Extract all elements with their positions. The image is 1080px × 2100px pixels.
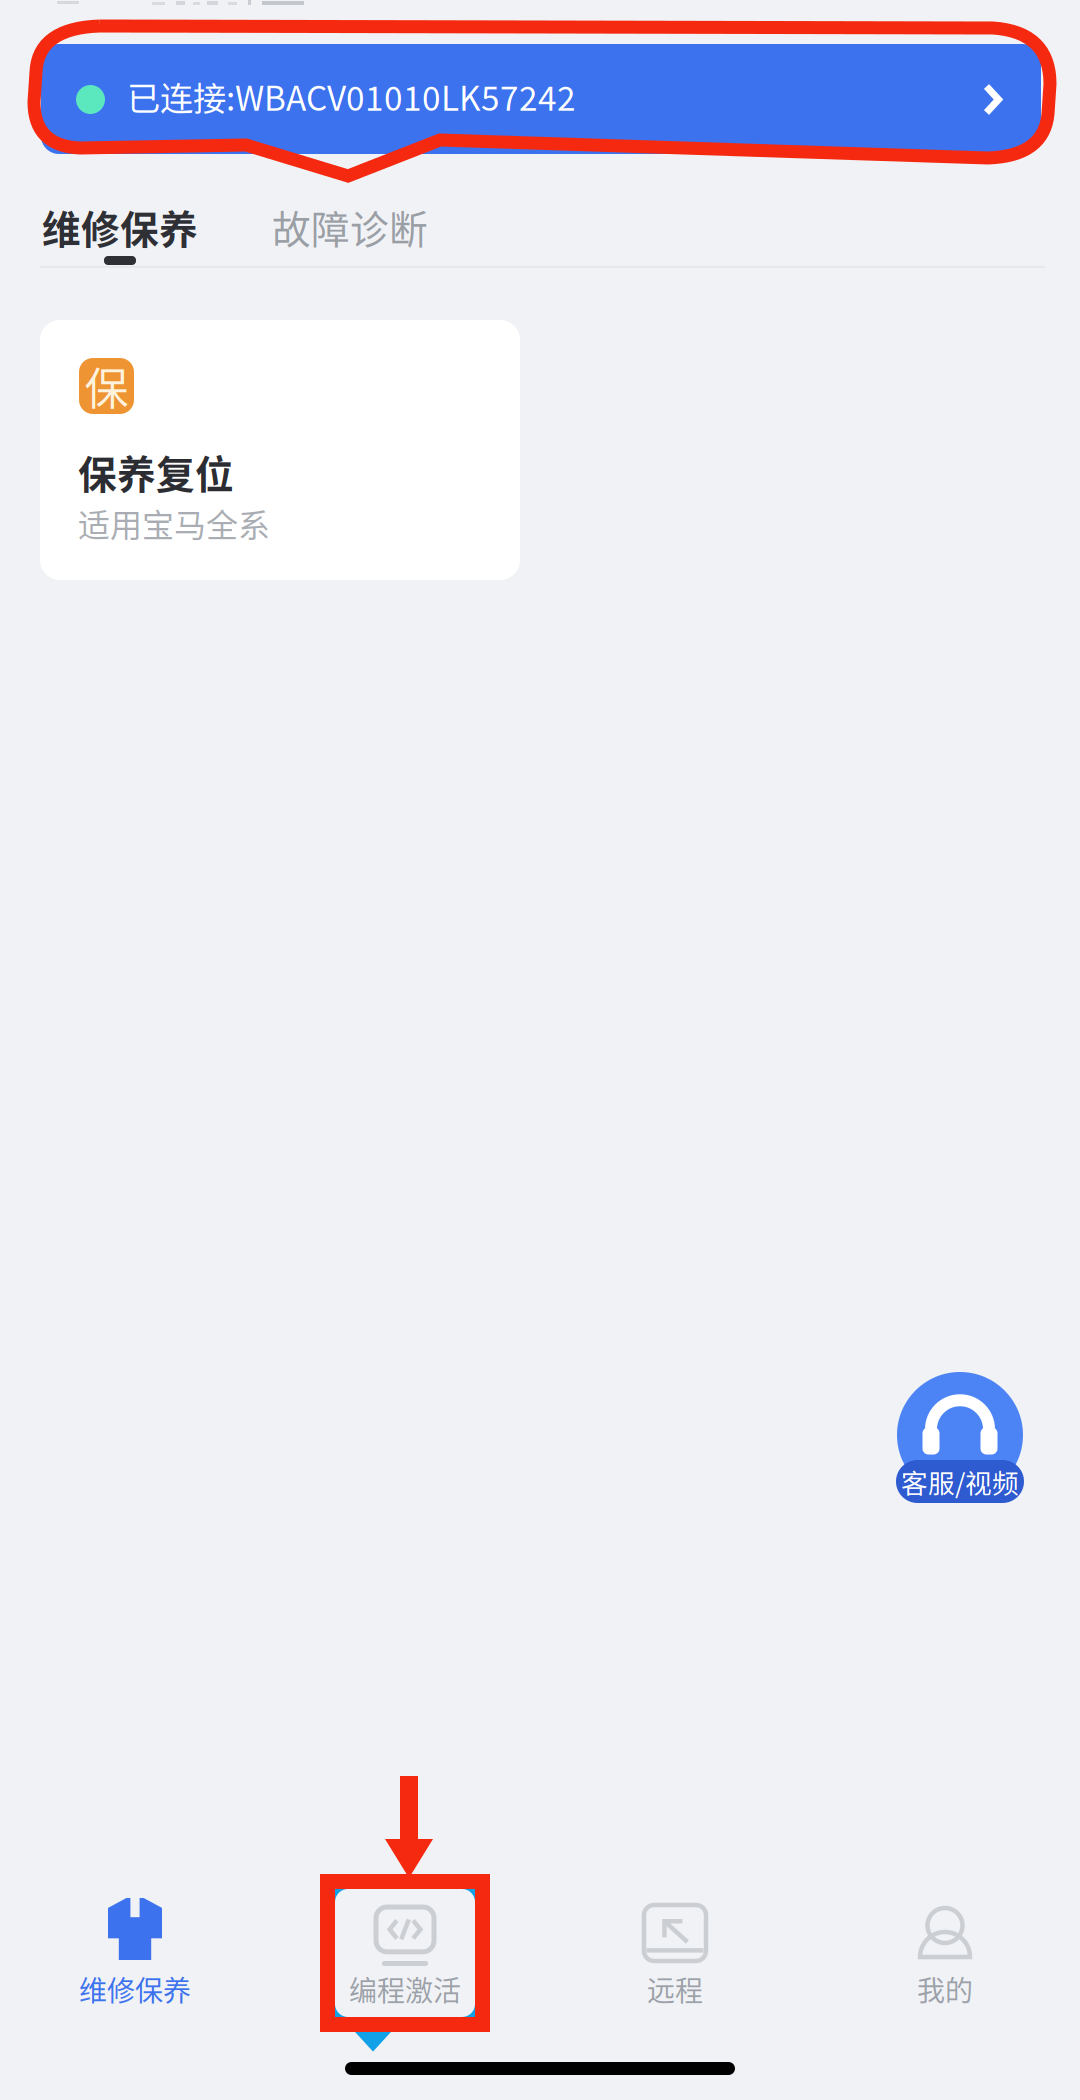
button[interactable]: 故障诊断 [272, 204, 428, 250]
button[interactable]: 编程激活 [270, 1890, 540, 2018]
staticText: 编程激活 [349, 1969, 461, 2009]
staticText: 保 [84, 354, 128, 418]
button[interactable]: 我的 [810, 1890, 1080, 2018]
button[interactable]: 维修保养 [0, 1890, 270, 2018]
staticText: 我的 [917, 1969, 973, 2009]
staticText: 远程 [647, 1969, 703, 2009]
staticText: 故障诊断 [272, 199, 428, 255]
staticText: 适用宝马全系 [78, 500, 270, 546]
button[interactable]: 保 [40, 320, 520, 580]
staticText: 维修保养 [42, 199, 198, 255]
button[interactable]: 远程 [540, 1890, 810, 2018]
button[interactable]: 已连接:WBACV01010LK57242 [41, 44, 1041, 154]
staticText: 保养复位 [78, 444, 234, 500]
staticText: 客服/视频 [901, 1462, 1019, 1501]
button[interactable]: 客服/视频 [896, 1372, 1024, 1503]
staticText: 已连接:WBACV01010LK57242 [127, 72, 576, 120]
button[interactable]: 维修保养 [42, 199, 198, 269]
staticText: 维修保养 [79, 1969, 191, 2009]
